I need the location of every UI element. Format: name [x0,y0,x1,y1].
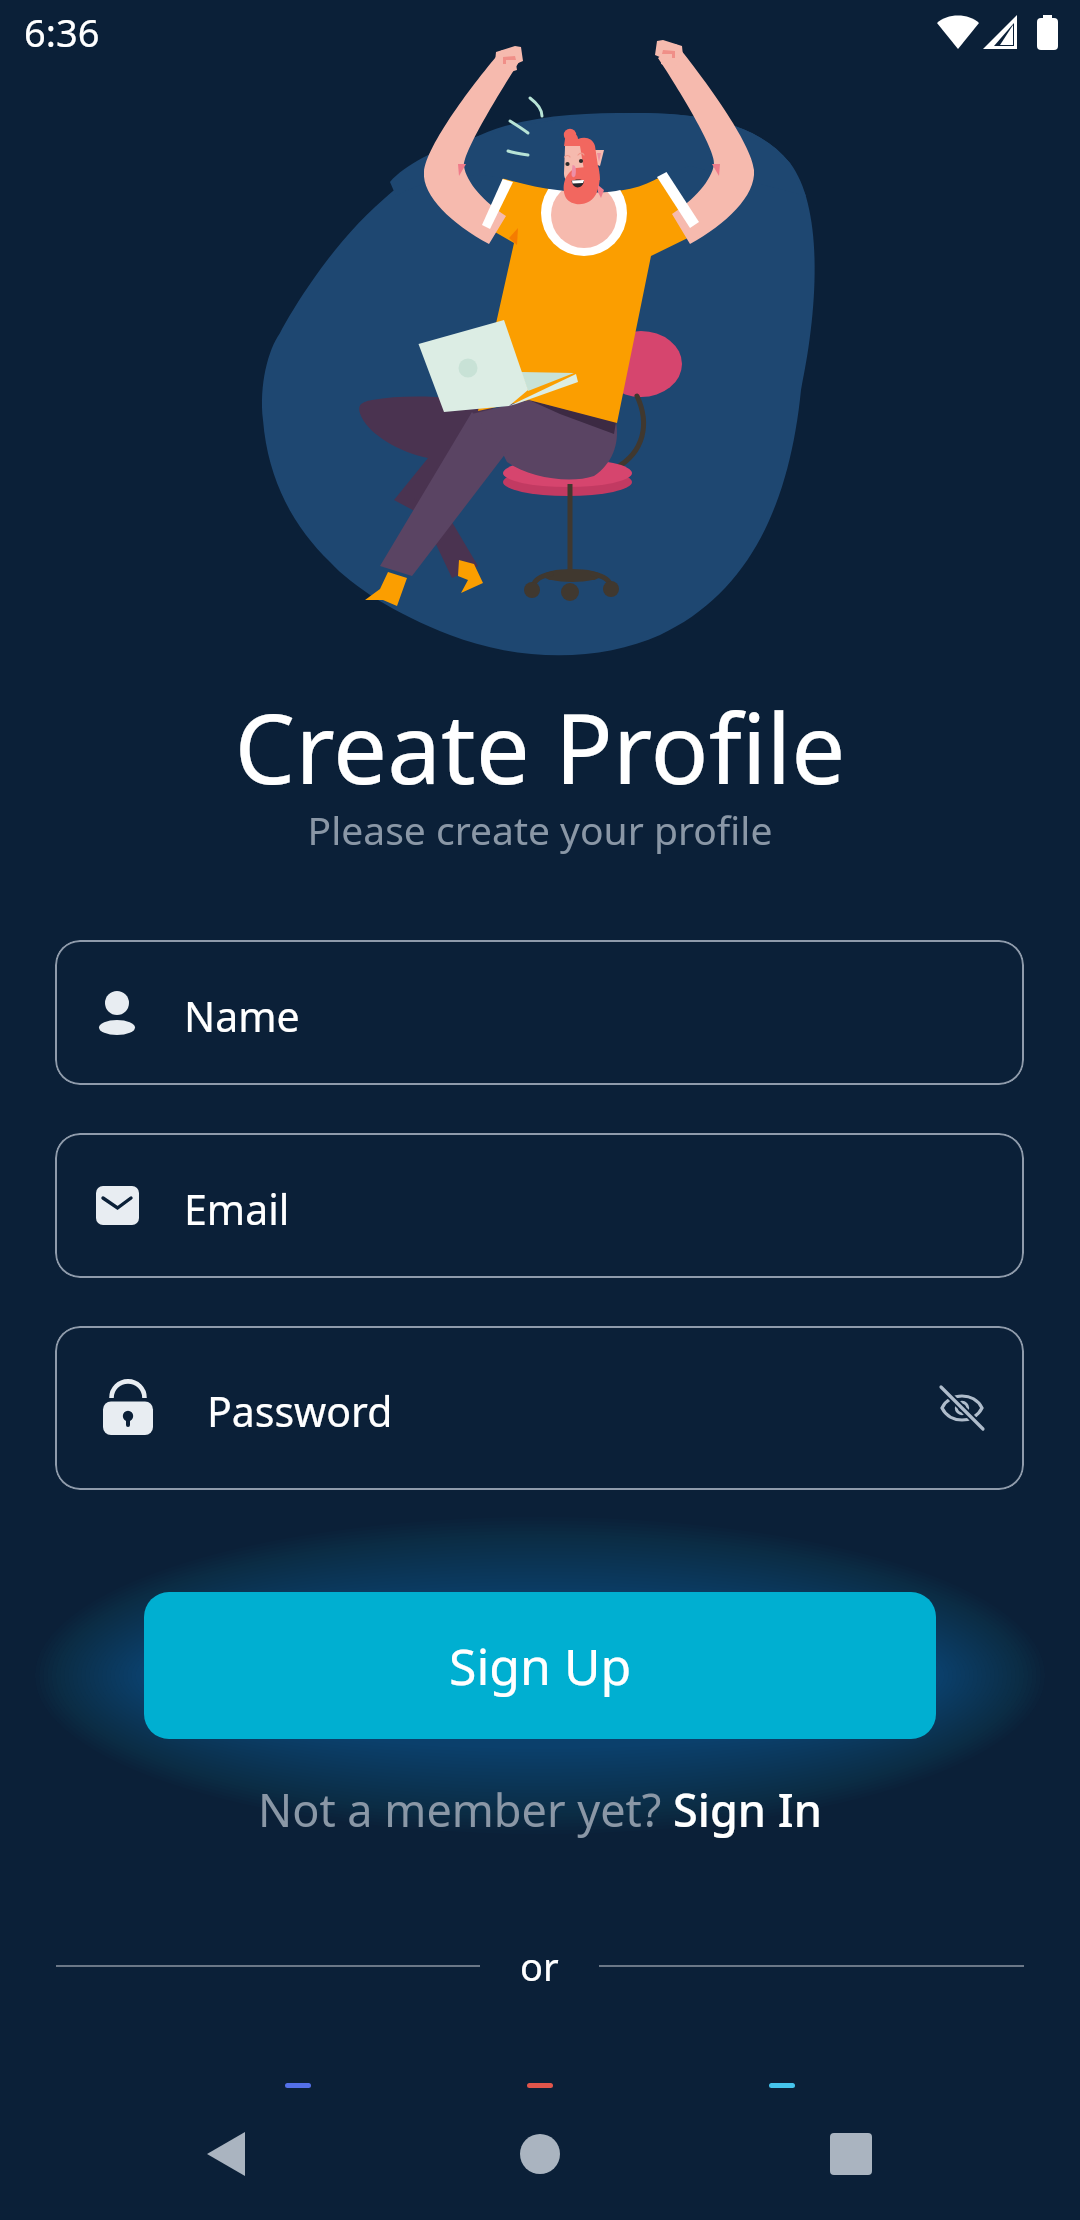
staticText: Name [184,988,300,1044]
button[interactable]: Home [492,2088,588,2220]
staticText: Sign In [673,1779,822,1840]
button[interactable]: Name [55,940,1024,1085]
staticText: 6:36 [24,6,100,58]
button[interactable]: Google sign in [527,2083,553,2088]
staticText: Email [184,1181,290,1237]
button[interactable]: Sign In [673,1779,822,1840]
button[interactable]: Show password [934,1380,990,1436]
button[interactable]: Twitter sign in [769,2083,795,2088]
staticText: or [520,1940,559,1992]
staticText: Create Profile [0,681,1080,812]
staticText: Password [207,1383,393,1439]
button[interactable]: Email [55,1133,1024,1278]
button[interactable]: Sign Up [144,1592,936,1739]
button[interactable]: Recent apps [803,2088,899,2220]
button[interactable]: Back [180,2088,276,2220]
staticText: Please create your profile [0,803,1080,856]
button[interactable]: Facebook sign in [285,2083,311,2088]
staticText: Not a member yet? [258,1779,673,1840]
staticText: Sign Up [449,1632,632,1700]
button[interactable]: Password [55,1326,1024,1490]
